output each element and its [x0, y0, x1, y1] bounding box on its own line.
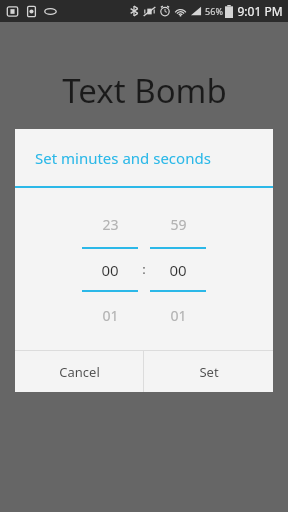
staticText: 00 — [169, 260, 187, 280]
staticText: 01 — [102, 306, 119, 325]
staticText: 59 — [170, 215, 187, 234]
button[interactable]: Cancel — [15, 351, 143, 392]
button[interactable] — [151, 140, 264, 180]
staticText: 9:01 PM — [237, 3, 283, 19]
staticText: Set — [199, 363, 219, 381]
staticText: 56% — [205, 5, 223, 17]
staticText: 00 — [101, 260, 119, 280]
button[interactable]: Set — [144, 351, 273, 392]
button[interactable] — [24, 140, 137, 180]
button[interactable]: 23 — [82, 209, 138, 330]
staticText: Set minutes and seconds — [35, 148, 211, 168]
button[interactable]: 59 — [150, 209, 206, 330]
staticText: : — [142, 260, 146, 278]
staticText: 01 — [170, 306, 187, 325]
staticText: Cancel — [59, 363, 100, 381]
staticText: 23 — [102, 215, 119, 234]
staticText: Text Bomb — [62, 68, 227, 113]
